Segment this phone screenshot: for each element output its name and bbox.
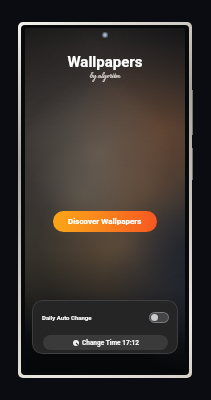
button[interactable]: Toggle daily auto change (149, 312, 169, 323)
staticText: Wallpapers (25, 53, 185, 71)
button[interactable]: Change Time 17:12 (43, 335, 168, 350)
staticText: Discover Wallpapers (68, 217, 142, 226)
staticText: Daily Auto Change (42, 314, 92, 321)
button[interactable]: Discover Wallpapers (53, 211, 157, 232)
staticText: by algoritm (25, 72, 185, 82)
staticText: Change Time 17:12 (82, 339, 139, 347)
